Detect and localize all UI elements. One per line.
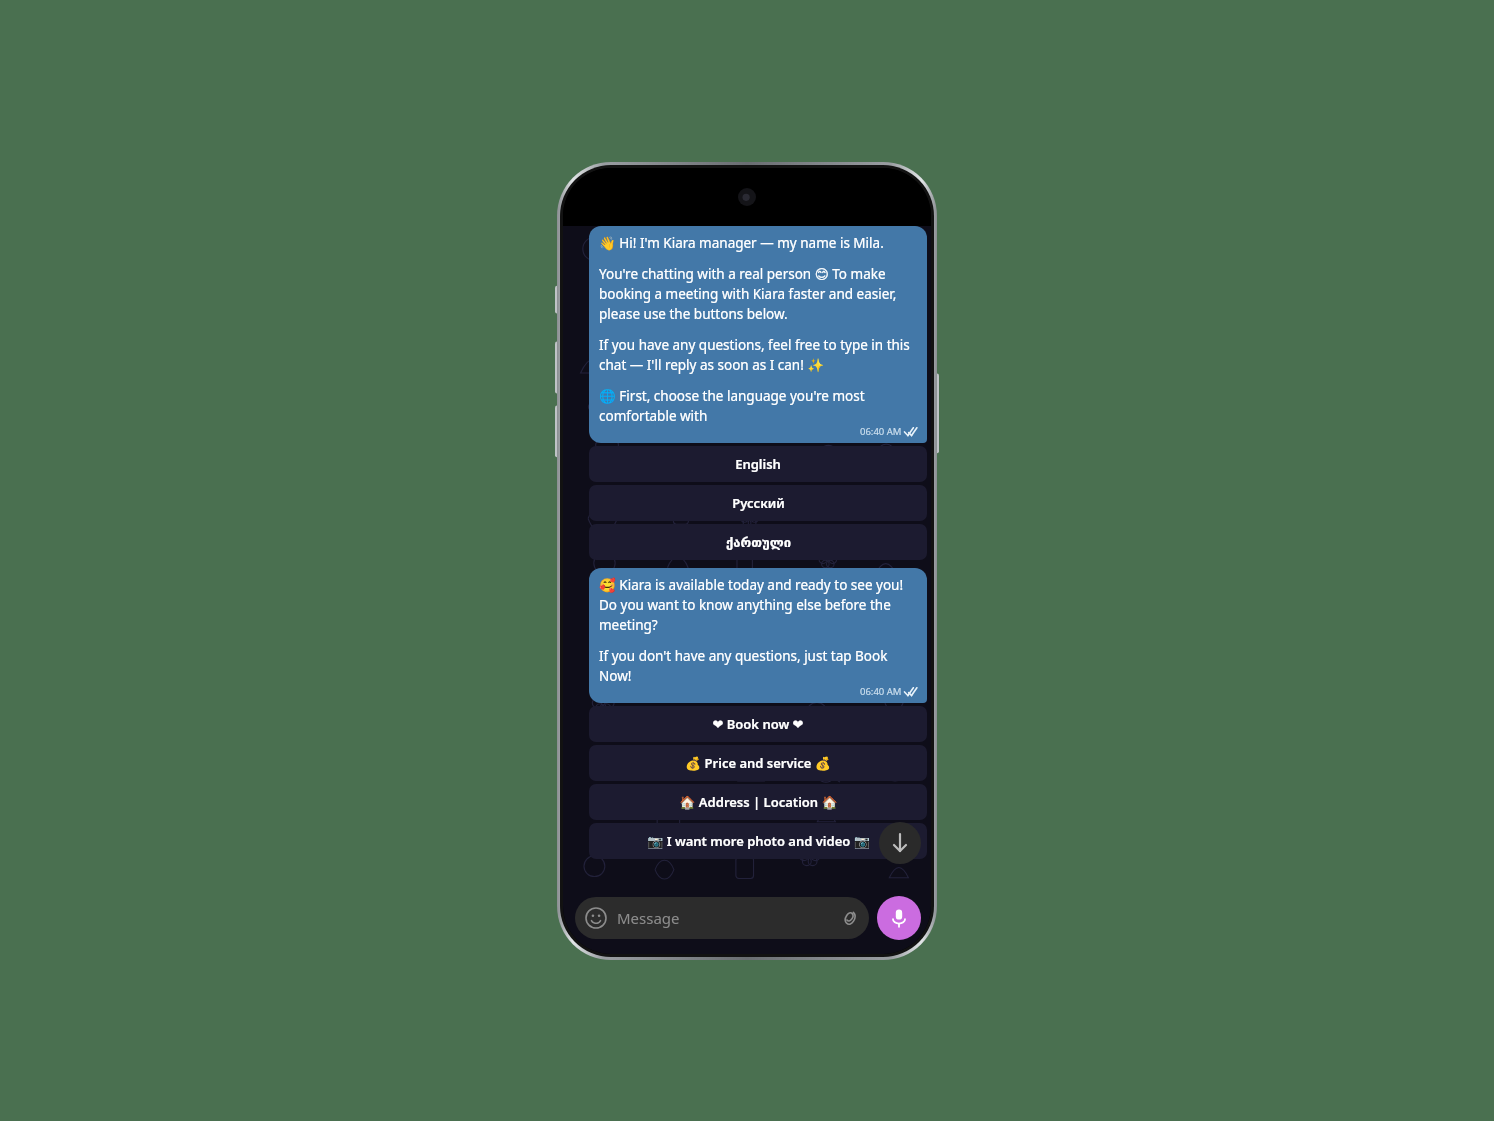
button[interactable]: English — [589, 446, 927, 482]
staticText: 📷 I want more photo and video 📷 — [647, 832, 870, 850]
other: Emoji — [585, 907, 607, 929]
staticText: English — [735, 455, 781, 473]
staticText: 🏠 Address | Location 🏠 — [679, 793, 838, 811]
staticText: If you don't have any questions, just ta… — [599, 647, 917, 685]
button[interactable]: Русский — [589, 485, 927, 521]
button[interactable]: 🏠 Address | Location 🏠 — [589, 784, 927, 820]
button[interactable]: ქართული — [589, 524, 927, 560]
staticText: Русский — [732, 494, 785, 512]
staticText: You're chatting with a real person 😊 To … — [599, 265, 917, 323]
staticText: 🌐 First, choose the language you're most… — [599, 387, 917, 425]
staticText: 🥰 Kiara is available today and ready to … — [599, 576, 917, 634]
button[interactable]: 💰 Price and service 💰 — [589, 745, 927, 781]
staticText: ❤️ Book now ❤️ — [712, 715, 804, 733]
staticText: Message — [617, 908, 839, 928]
staticText: 💰 Price and service 💰 — [685, 754, 831, 772]
button[interactable]: 📷 I want more photo and video 📷 — [589, 823, 927, 859]
staticText: 06:40 AM — [860, 685, 902, 698]
button[interactable]: Voice message — [877, 896, 921, 940]
button[interactable]: Scroll to bottom — [879, 822, 921, 864]
other: Attach — [839, 908, 859, 928]
button[interactable]: Emoji — [575, 897, 869, 939]
staticText: 👋 Hi! I'm Kiara manager — my name is Mil… — [599, 234, 884, 252]
staticText: 06:40 AM — [860, 425, 902, 438]
button[interactable]: ❤️ Book now ❤️ — [589, 706, 927, 742]
staticText: ქართული — [726, 535, 791, 550]
button[interactable]: 👋 Hi! I'm Kiara manager — my name is Mil… — [589, 226, 927, 443]
staticText: If you have any questions, feel free to … — [599, 336, 917, 374]
button[interactable]: 🥰 Kiara is available today and ready to … — [589, 568, 927, 703]
